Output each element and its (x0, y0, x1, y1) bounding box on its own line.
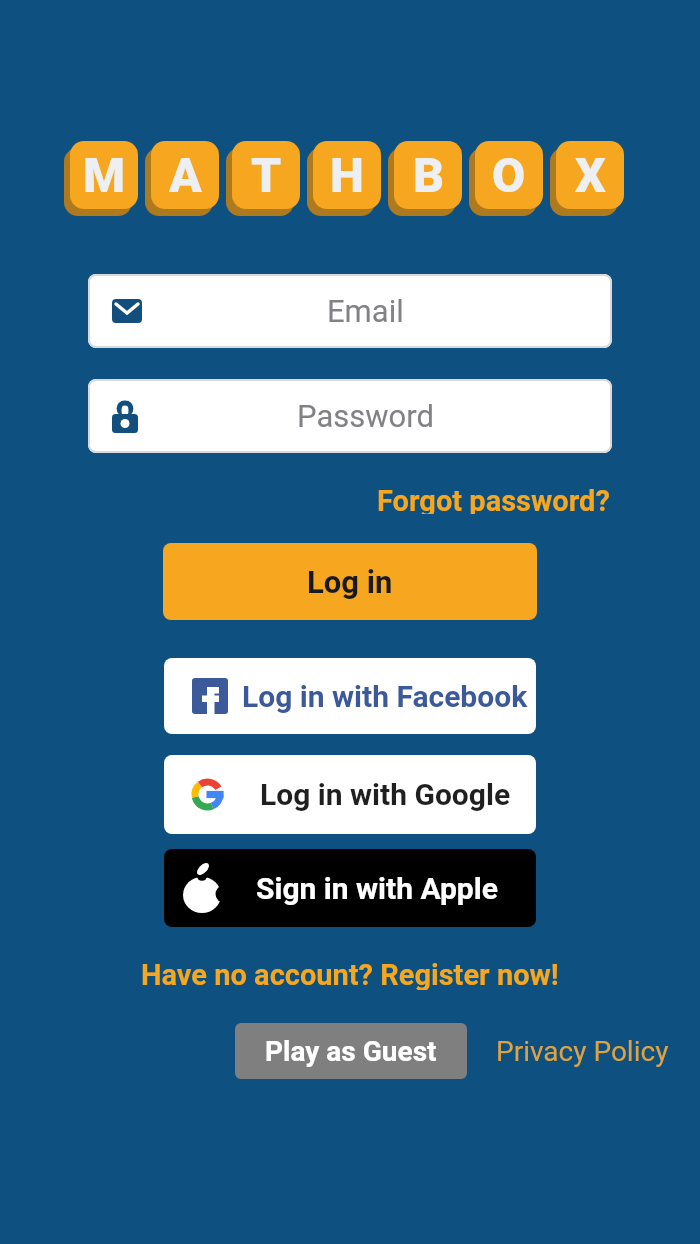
staticText: Email (327, 293, 404, 329)
button[interactable]: Play as Guest (235, 1023, 467, 1079)
staticText: Play as Guest (265, 1035, 437, 1068)
staticText: A (169, 147, 202, 203)
staticText: O (492, 147, 526, 203)
button[interactable]: Forgot password? (377, 484, 610, 514)
button[interactable]: Log in with Google (164, 755, 536, 834)
button[interactable]: Log in (163, 543, 537, 620)
staticText: Sign in with Apple (256, 871, 498, 906)
button[interactable]: Email (88, 274, 612, 348)
button[interactable]: Log in with Facebook (164, 658, 536, 734)
button[interactable]: Have no account? Register now! (141, 958, 559, 990)
staticText: Log in with Facebook (242, 679, 528, 714)
button[interactable]: Sign in with Apple (164, 849, 536, 927)
staticText: T (251, 147, 282, 203)
staticText: H (330, 147, 364, 203)
staticText: Log in (307, 564, 393, 600)
staticText: B (413, 147, 444, 203)
button[interactable]: Privacy Policy (496, 1035, 669, 1068)
button[interactable]: Password (88, 379, 612, 453)
staticText: Log in with Google (260, 777, 511, 812)
staticText: X (575, 147, 606, 203)
staticText: M (83, 147, 126, 203)
staticText: Password (297, 398, 434, 434)
